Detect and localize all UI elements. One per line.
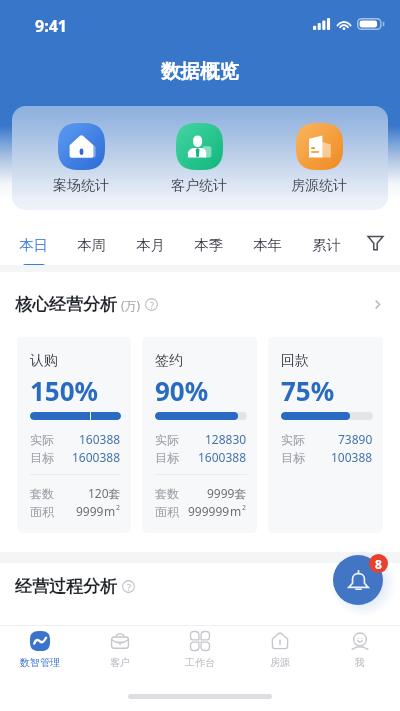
staticText: 本日 bbox=[19, 236, 48, 254]
staticText: 本季 bbox=[194, 236, 223, 254]
staticText: 100388 bbox=[331, 449, 373, 465]
button[interactable]: 通知 bbox=[333, 555, 383, 605]
staticText: 150% bbox=[30, 373, 99, 408]
button[interactable]: 我 bbox=[320, 626, 400, 669]
button[interactable]: 回款 bbox=[268, 337, 383, 533]
staticText: 128830 bbox=[205, 431, 247, 447]
button[interactable]: 房源 bbox=[240, 626, 320, 669]
staticText: 75% bbox=[281, 373, 335, 408]
staticText: 数据概览 bbox=[0, 59, 400, 84]
staticText: 实际 bbox=[155, 432, 179, 447]
button[interactable]: 核心经营分析 bbox=[0, 272, 400, 337]
staticText: 套数 bbox=[155, 486, 179, 501]
staticText: 套数 bbox=[30, 486, 54, 501]
button[interactable]: 筛选 bbox=[357, 219, 393, 268]
staticText: 73890 bbox=[338, 431, 373, 447]
button[interactable]: 本周 bbox=[67, 219, 115, 268]
button[interactable]: 工作台 bbox=[160, 626, 240, 669]
staticText: 目标 bbox=[281, 450, 305, 465]
staticText: (万) bbox=[121, 297, 141, 313]
button[interactable]: 认购 bbox=[17, 337, 131, 533]
staticText: 8 bbox=[375, 556, 382, 572]
button[interactable]: 数智管理 bbox=[0, 626, 80, 669]
staticText: 2 bbox=[116, 503, 121, 513]
staticText: 9999套 bbox=[207, 485, 247, 501]
button[interactable]: 客户 bbox=[80, 626, 160, 669]
button[interactable]: 本日 bbox=[9, 219, 57, 268]
button[interactable]: 房源统计 bbox=[283, 106, 355, 195]
button[interactable]: 客户统计 bbox=[163, 106, 235, 195]
button[interactable]: 本季 bbox=[184, 219, 232, 268]
staticText: 客户 bbox=[110, 656, 130, 669]
staticText: 核心经营分析 bbox=[15, 294, 117, 315]
staticText: 90% bbox=[155, 373, 209, 408]
staticText: 房源统计 bbox=[291, 177, 347, 195]
button[interactable]: 案场统计 bbox=[45, 106, 117, 195]
button[interactable]: 本月 bbox=[126, 219, 174, 268]
button[interactable]: 经营过程分析 bbox=[0, 563, 400, 609]
staticText: 120套 bbox=[88, 485, 121, 501]
staticText: 经营过程分析 bbox=[15, 576, 117, 597]
staticText: 本周 bbox=[77, 236, 106, 254]
staticText: 面积 bbox=[30, 504, 54, 519]
button[interactable]: 累计 bbox=[302, 219, 350, 268]
staticText: 本年 bbox=[253, 236, 282, 254]
staticText: 实际 bbox=[281, 432, 305, 447]
staticText: 实际 bbox=[30, 432, 54, 447]
staticText: 1600388 bbox=[72, 449, 121, 465]
staticText: 面积 bbox=[155, 504, 179, 519]
staticText: 认购 bbox=[30, 352, 58, 370]
button[interactable]: 本年 bbox=[243, 219, 291, 268]
staticText: 数智管理 bbox=[20, 656, 60, 669]
staticText: 本月 bbox=[136, 236, 165, 254]
staticText: 9999 bbox=[76, 503, 104, 519]
staticText: 我 bbox=[355, 656, 365, 669]
staticText: 2 bbox=[242, 503, 247, 513]
staticText: 签约 bbox=[155, 352, 183, 370]
staticText: 案场统计 bbox=[53, 177, 109, 195]
staticText: 累计 bbox=[312, 236, 341, 254]
staticText: 999999 bbox=[188, 503, 230, 519]
staticText: 目标 bbox=[155, 450, 179, 465]
staticText: m bbox=[230, 503, 242, 519]
staticText: 目标 bbox=[30, 450, 54, 465]
staticText: ? bbox=[127, 581, 131, 593]
staticText: 房源 bbox=[270, 656, 290, 669]
staticText: 160388 bbox=[79, 431, 121, 447]
button[interactable]: 签约 bbox=[142, 337, 257, 533]
staticText: 1600388 bbox=[198, 449, 247, 465]
staticText: 客户统计 bbox=[171, 177, 227, 195]
staticText: 工作台 bbox=[185, 656, 215, 669]
staticText: 9:41 bbox=[35, 15, 67, 37]
staticText: m bbox=[104, 503, 116, 519]
staticText: 回款 bbox=[281, 352, 309, 370]
staticText: ? bbox=[150, 299, 154, 311]
